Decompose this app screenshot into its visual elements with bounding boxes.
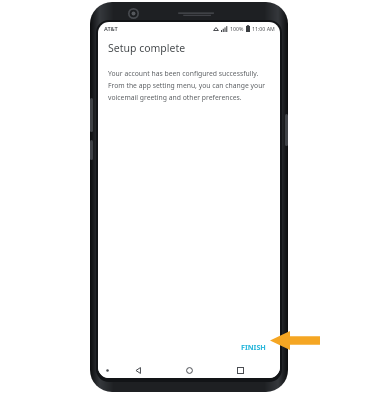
staticText: From the app setting menu, you can chang… bbox=[108, 81, 266, 90]
staticText: 11:00 AM bbox=[252, 25, 275, 32]
button[interactable]: Home bbox=[178, 362, 200, 378]
staticText: voicemail greeting and other preferences… bbox=[108, 93, 242, 102]
button[interactable]: Back bbox=[127, 362, 149, 378]
button[interactable]: FINISH bbox=[235, 338, 272, 356]
staticText: AT&T bbox=[104, 25, 118, 33]
other: Notification dot bbox=[106, 369, 109, 372]
staticText: 100% bbox=[230, 25, 244, 32]
staticText: Setup complete bbox=[108, 41, 186, 55]
staticText: Your account has been configured success… bbox=[108, 69, 259, 78]
staticText: FINISH bbox=[241, 342, 266, 352]
other: Pointer to Finish button bbox=[270, 331, 320, 350]
button[interactable]: Recent apps bbox=[229, 362, 251, 378]
